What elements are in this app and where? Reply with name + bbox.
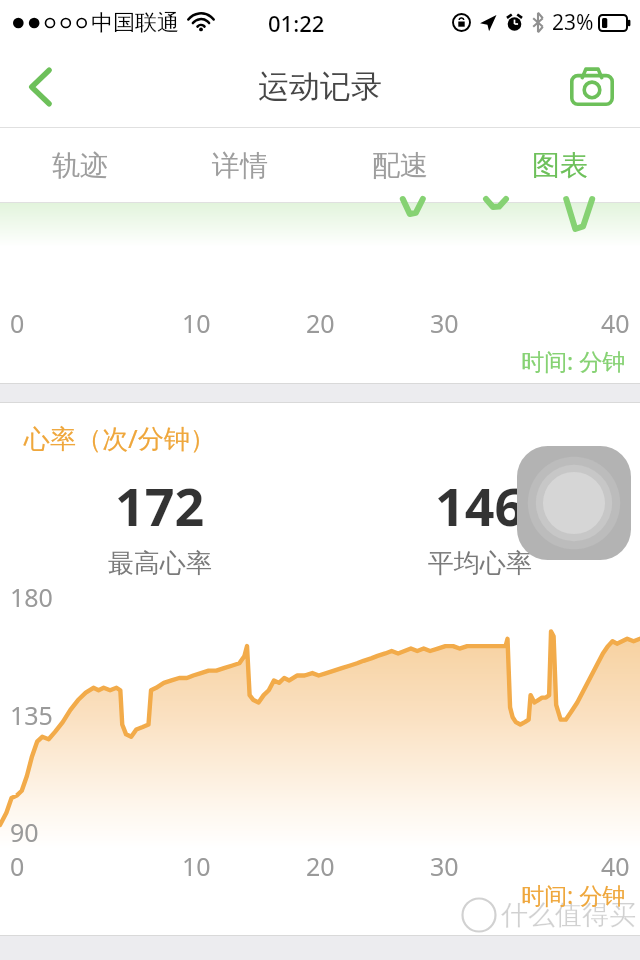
staticText: 10 [182,306,211,340]
staticText: 40 [601,849,630,879]
staticText: 23% [552,8,594,37]
staticText: 什么值得买 [501,898,636,932]
staticText: 20 [306,306,335,340]
staticText: 时间: 分钟 [521,879,626,910]
staticText: 轨迹 [52,148,108,183]
staticText: 配速 [372,148,428,183]
staticText: 0 [10,306,25,340]
staticText: 图表 [532,148,588,183]
staticText: 时间: 分钟 [521,345,626,376]
button[interactable]: AssistiveTouch [517,446,631,560]
staticText: 0 [10,849,25,879]
staticText: 心率（次/分钟） [24,420,216,456]
staticText: 20 [306,849,335,879]
button[interactable]: 详情 [160,128,320,203]
button[interactable]: 配速 [320,128,480,203]
staticText: 40 [601,306,630,340]
staticText: 135 [10,698,53,732]
staticText: 详情 [212,148,268,183]
staticText: 172 [115,470,205,541]
staticText: 90 [10,815,39,849]
button[interactable]: 图表 [480,128,640,203]
button[interactable]: 轨迹 [0,128,160,203]
staticText: 运动记录 [258,67,382,106]
staticText: 01:22 [268,8,325,38]
staticText: 最高心率 [108,547,212,580]
staticText: 30 [430,306,459,340]
button[interactable]: Camera [558,53,626,121]
button[interactable]: Back [6,53,74,121]
staticText: 180 [10,580,53,614]
button[interactable]: 146 [320,470,640,580]
staticText: 30 [430,849,459,879]
staticText: 146 [435,470,525,541]
button[interactable]: 172 [0,470,320,580]
staticText: 中国联通 [91,9,179,37]
staticText: 10 [182,849,211,879]
staticText: 平均心率 [428,547,532,580]
